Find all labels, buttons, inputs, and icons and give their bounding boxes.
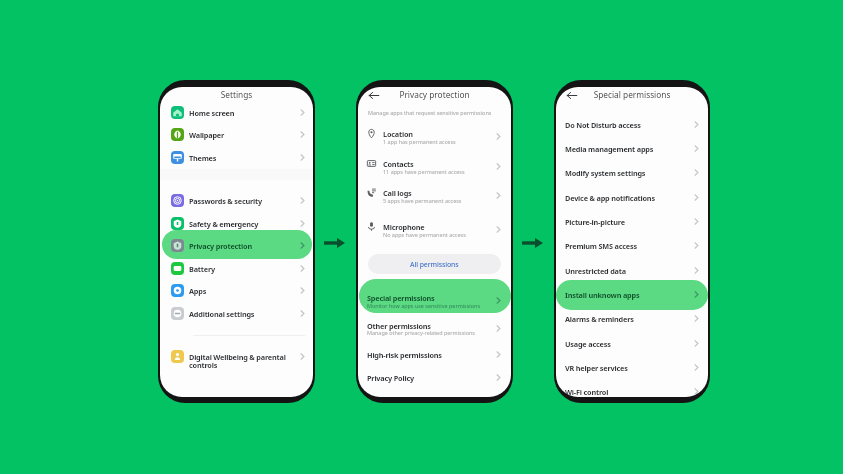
button[interactable]: Additional settings (160, 302, 313, 324)
staticText: All permissions (410, 260, 459, 269)
staticText: Usage access (565, 339, 611, 349)
staticText: Do Not Disturb access (565, 120, 641, 130)
staticText: VR helper services (565, 363, 628, 373)
staticText: Premium SMS access (565, 241, 637, 251)
staticText: Privacy protection (358, 89, 511, 100)
button[interactable]: Unrestricted data (556, 259, 708, 281)
staticText: Wallpaper (189, 130, 225, 140)
button[interactable]: Back (565, 88, 578, 101)
button[interactable]: Passwords & security (160, 189, 313, 211)
button[interactable]: Media management apps (556, 137, 708, 159)
button[interactable]: Apps (160, 279, 313, 301)
staticText: Picture-in-picture (565, 217, 625, 227)
button[interactable]: Other permissions (358, 316, 511, 336)
button[interactable]: Battery (160, 257, 313, 279)
staticText: Location (383, 129, 413, 139)
button[interactable]: Wallpaper (160, 123, 313, 145)
button[interactable]: Home screen (160, 101, 313, 123)
staticText: Apps (189, 286, 207, 296)
button[interactable]: Call logs (358, 183, 511, 203)
staticText: Install unknown apps (565, 290, 640, 300)
staticText: Privacy Policy (367, 373, 414, 383)
button[interactable]: Wi-Fi control (556, 380, 708, 397)
staticText: 11 apps have permanent access (383, 168, 465, 175)
button[interactable]: Usage access (556, 332, 708, 354)
staticText: Special permissions (556, 89, 708, 100)
button[interactable]: VR helper services (556, 356, 708, 378)
button[interactable]: Do Not Disturb access (556, 113, 708, 135)
button[interactable]: Safety & emergency (160, 212, 313, 234)
button[interactable]: Location (358, 124, 511, 144)
button[interactable]: Picture-in-picture (556, 210, 708, 232)
staticText: Manage apps that request sensitive permi… (368, 109, 492, 116)
staticText: Battery (189, 264, 215, 274)
staticText: Passwords & security (189, 196, 262, 206)
staticText: Contacts (383, 159, 414, 169)
staticText: Privacy protection (189, 241, 252, 251)
staticText: Manage other privacy-related permissions (367, 329, 475, 336)
staticText: Other permissions (367, 321, 431, 331)
staticText: Settings (160, 89, 313, 100)
staticText: Unrestricted data (565, 266, 626, 276)
staticText: Device & app notifications (565, 193, 655, 203)
staticText: Safety & emergency (189, 219, 259, 229)
button[interactable]: High-risk permissions (358, 345, 511, 365)
button[interactable]: Alarms & reminders (556, 307, 708, 329)
staticText: Additional settings (189, 309, 255, 319)
button[interactable]: Digital Wellbeing & parental (160, 345, 313, 367)
button[interactable]: Themes (160, 146, 313, 168)
staticText: High-risk permissions (367, 350, 442, 360)
button[interactable]: Premium SMS access (556, 234, 708, 256)
button[interactable]: All permissions (368, 254, 501, 274)
staticText: Media management apps (565, 144, 654, 154)
button[interactable]: Contacts (358, 154, 511, 174)
staticText: Special permissions (367, 293, 435, 303)
staticText: Alarms & reminders (565, 314, 634, 324)
button[interactable]: Install unknown apps (556, 283, 708, 305)
button[interactable]: Device & app notifications (556, 186, 708, 208)
staticText: Wi-Fi control (565, 387, 609, 397)
staticText: 1 app has permanent access (383, 138, 456, 145)
staticText: Monitor how apps use sensitive permissio… (367, 302, 480, 309)
button[interactable]: Privacy protection (160, 234, 313, 256)
staticText: Home screen (189, 108, 235, 118)
button[interactable]: Microphone (358, 217, 511, 237)
staticText: Modify system settings (565, 168, 646, 178)
staticText: controls (189, 360, 218, 370)
button[interactable]: Modify system settings (556, 161, 708, 183)
staticText: Themes (189, 153, 217, 163)
staticText: Call logs (383, 188, 412, 198)
button[interactable]: Privacy Policy (358, 368, 511, 388)
staticText: Digital Wellbeing & parental (189, 352, 286, 362)
staticText: Microphone (383, 222, 425, 232)
staticText: No apps have permanent access (383, 231, 466, 238)
staticText: 5 apps have permanent access (383, 197, 462, 204)
button[interactable] (359, 279, 511, 313)
button[interactable]: Back (367, 88, 380, 101)
